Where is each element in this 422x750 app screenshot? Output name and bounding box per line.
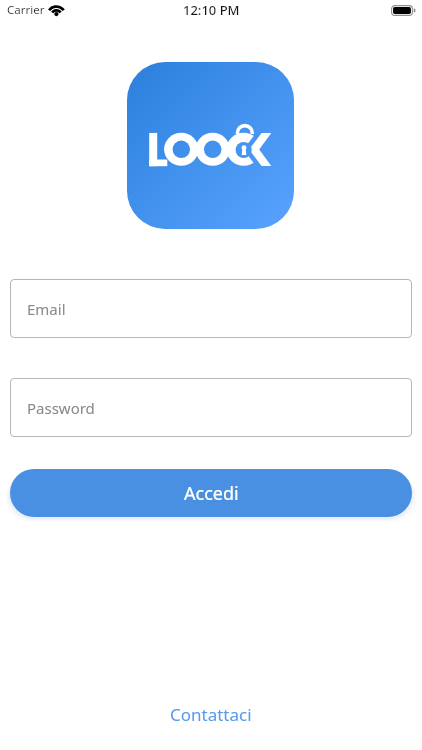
other: Loock logo (127, 62, 294, 229)
button[interactable]: Accedi (10, 469, 412, 517)
staticText: Contattaci (170, 703, 252, 726)
staticText: Carrier (7, 2, 45, 18)
staticText: 12:10 PM (183, 1, 240, 19)
other: Wi-Fi (49, 5, 65, 16)
button[interactable]: Email (10, 279, 412, 338)
button[interactable]: Password (10, 378, 412, 437)
staticText: Password (27, 398, 95, 418)
button[interactable]: Contattaci (156, 697, 266, 732)
other: Battery (391, 5, 417, 17)
staticText: Email (27, 299, 66, 319)
staticText: Accedi (184, 481, 239, 506)
